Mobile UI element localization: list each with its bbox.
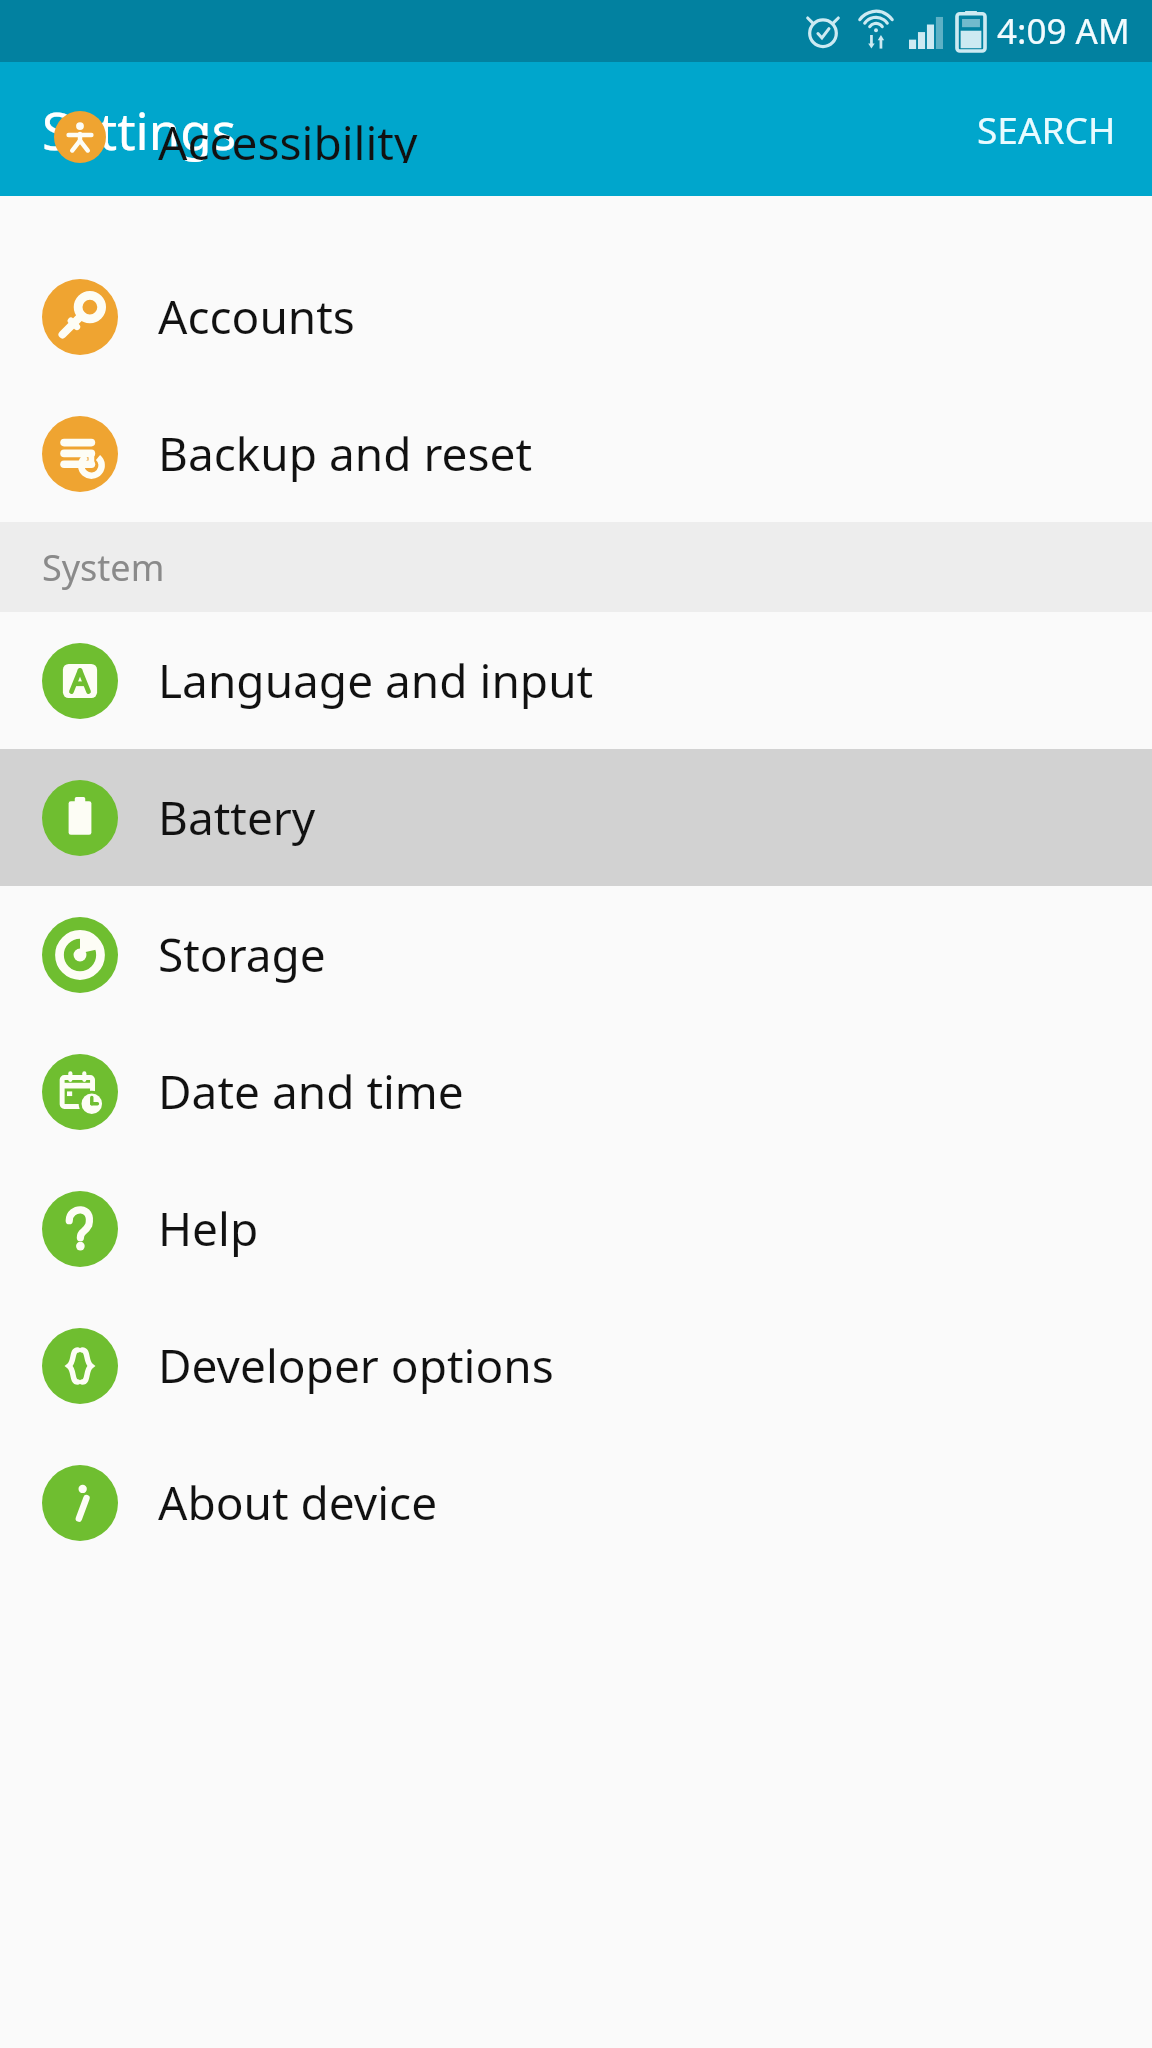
staticText: SEARCH — [977, 104, 1116, 154]
button[interactable]: About device — [0, 1434, 1152, 1571]
button[interactable]: SEARCH — [941, 76, 1152, 182]
button[interactable]: Accounts — [0, 248, 1152, 385]
button[interactable]: Storage — [0, 886, 1152, 1023]
button[interactable]: Language and input — [0, 612, 1152, 749]
staticText: Help — [158, 1197, 259, 1260]
staticText: Settings — [42, 95, 237, 164]
staticText: 4:09 AM — [997, 7, 1130, 55]
staticText: Backup and reset — [158, 422, 533, 485]
staticText: System — [42, 543, 165, 592]
button[interactable]: Date and time — [0, 1023, 1152, 1160]
staticText: Developer options — [158, 1334, 554, 1397]
button[interactable]: Help — [0, 1160, 1152, 1297]
button[interactable]: Battery — [0, 749, 1152, 886]
staticText: Date and time — [158, 1060, 464, 1123]
staticText: Accounts — [158, 285, 355, 348]
button[interactable]: Backup and reset — [0, 385, 1152, 522]
staticText: Accessibility — [158, 111, 418, 163]
button[interactable]: Developer options — [0, 1297, 1152, 1434]
staticText: Language and input — [158, 649, 594, 712]
staticText: Battery — [158, 786, 316, 849]
staticText: Storage — [158, 923, 326, 986]
staticText: About device — [158, 1471, 438, 1534]
